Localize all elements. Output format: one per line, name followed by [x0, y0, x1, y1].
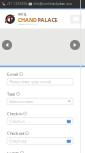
staticText: Check-in [9, 118, 24, 124]
button[interactable]: Next slide [70, 40, 80, 50]
staticText: PALACE [38, 16, 58, 23]
staticText: P [9, 13, 15, 25]
staticText: COME, MEET AT THE PALACE [18, 24, 37, 25]
button[interactable]: Previous slide [2, 40, 12, 50]
staticText: Guests [7, 150, 19, 153]
staticText: Check-out [9, 138, 26, 143]
staticText: CHAND [18, 16, 37, 23]
button[interactable]: Select a room [7, 98, 73, 105]
staticText: +91 1203456 [7, 2, 28, 6]
staticText: HOTEL [18, 13, 26, 16]
staticText: info@hotelchandpalace.com [33, 2, 71, 6]
staticText: Type [7, 91, 15, 96]
staticText: Check-out [7, 131, 24, 136]
staticText: Please enter your e-mail [9, 79, 51, 84]
button[interactable]: Check-out [7, 137, 73, 144]
button[interactable]: Menu [70, 14, 82, 23]
button[interactable]: Please enter your e-mail [7, 78, 73, 85]
staticText: Check-in [7, 111, 22, 116]
staticText: Select a room [9, 99, 33, 104]
staticText: E-mail [7, 71, 18, 77]
button[interactable]: Check-in [7, 118, 73, 124]
